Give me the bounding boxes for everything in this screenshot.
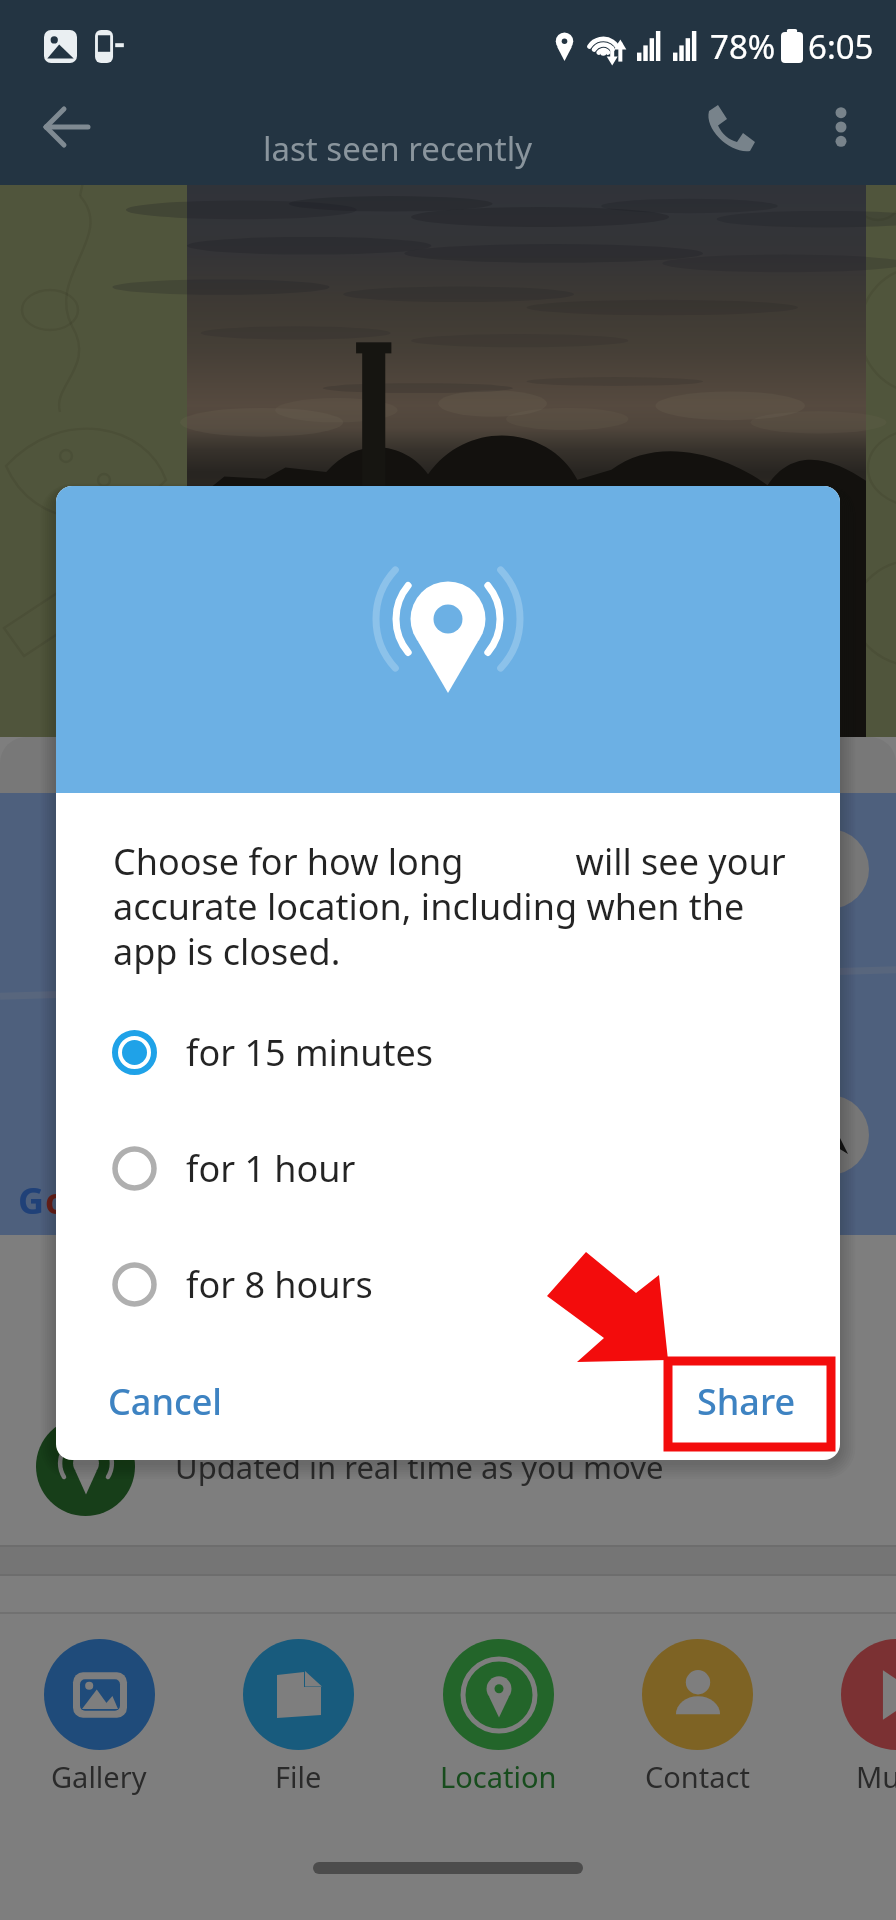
button[interactable]: Back [20,92,113,161]
button[interactable]: Location [398,1639,598,1796]
staticText: Share [697,1377,796,1426]
button[interactable]: Map layers [789,829,869,909]
staticText: o [45,1176,68,1225]
button[interactable]: Share [675,1363,818,1440]
staticText: Location [440,1757,557,1796]
staticText: File [275,1757,322,1796]
button[interactable]: Gallery [0,1639,199,1796]
staticText: for 1 hour [186,1144,356,1193]
button[interactable]: File [198,1639,398,1796]
staticText: 6:05 [808,24,874,69]
button[interactable]: for 15 minutes [56,994,840,1110]
staticText: Contact [645,1757,750,1796]
staticText: G [18,1176,45,1225]
staticText: l [114,1176,125,1225]
button[interactable]: Contact [597,1639,797,1796]
button[interactable]: Music [796,1639,896,1796]
staticText: Cancel [108,1377,223,1426]
button[interactable]: for 8 hours [56,1226,840,1342]
staticText: Gallery [51,1757,147,1796]
button[interactable]: More options [795,92,887,161]
staticText: for 8 hours [186,1260,373,1309]
staticText: Music [856,1757,896,1796]
button[interactable]: Call [683,92,776,161]
staticText: Updated in real time as you move [175,1446,664,1488]
button[interactable]: My location [789,1095,869,1175]
staticText: Choose for how long will see your accura… [113,837,790,976]
staticText: for 15 minutes [186,1028,433,1077]
button[interactable]: Cancel [86,1363,245,1440]
staticText: 78% [710,24,776,69]
staticText: last seen recently [263,126,533,171]
button[interactable]: for 1 hour [56,1110,840,1226]
staticText: e [125,1176,147,1225]
